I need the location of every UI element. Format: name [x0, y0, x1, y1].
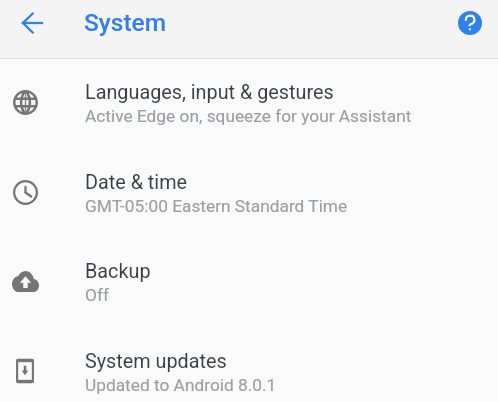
- button[interactable]: Date & time: [0, 149, 498, 239]
- button[interactable]: Back: [12, 3, 52, 43]
- staticText: System updates: [85, 350, 227, 373]
- button[interactable]: Backup: [0, 238, 498, 328]
- staticText: Active Edge on, squeeze for your Assista…: [85, 106, 412, 126]
- button[interactable]: System updates: [0, 328, 498, 402]
- staticText: GMT-05:00 Eastern Standard Time: [85, 196, 348, 216]
- staticText: Updated to Android 8.0.1: [85, 375, 277, 395]
- staticText: Backup: [85, 260, 151, 283]
- button[interactable]: Help: [450, 3, 490, 43]
- button[interactable]: Languages, input & gestures: [0, 59, 498, 149]
- staticText: System: [84, 8, 167, 37]
- staticText: Off: [85, 285, 109, 305]
- staticText: Languages, input & gestures: [85, 81, 334, 104]
- staticText: Date & time: [85, 171, 188, 194]
